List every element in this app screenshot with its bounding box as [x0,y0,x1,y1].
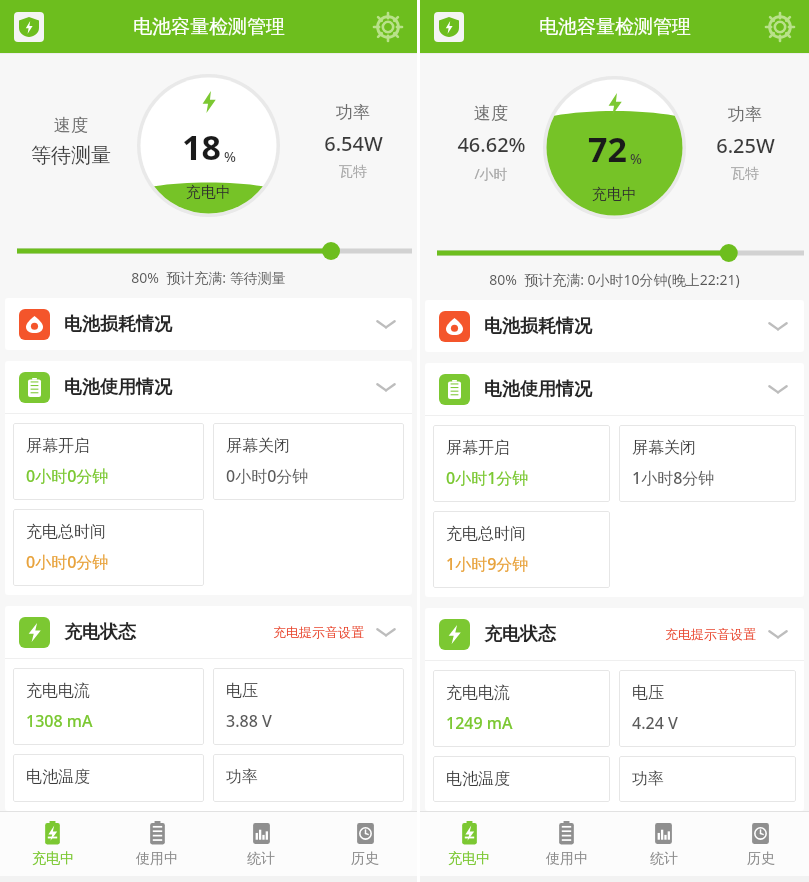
staticText: 速度 [54,115,88,136]
staticText: % [224,147,236,166]
staticText: 0小时0分钟 [26,465,109,487]
staticText: 0小时0分钟 [226,465,309,487]
button[interactable]: 充电中 [0,812,105,876]
staticText: 屏幕开启 [446,438,510,458]
button[interactable]: 充电提示音设置 [269,620,368,644]
button[interactable]: 使用中 [105,812,209,876]
staticText: 电池温度 [26,767,90,787]
staticText: 1308 mA [26,710,93,732]
staticText: 瓦特 [339,163,367,181]
staticText: 80% 预计充满: 0小时10分钟(晚上22:21) [489,270,740,289]
staticText: 1小时8分钟 [632,467,715,489]
staticText: 功率 [226,767,258,787]
staticText: 历史 [747,850,775,868]
staticText: 速度 [474,103,508,124]
button[interactable]: 电池使用情况 [5,361,412,413]
staticText: 电池损耗情况 [484,315,766,338]
button[interactable]: 功率 [213,754,404,802]
staticText: 功率 [728,104,762,125]
staticText: 充电总时间 [26,522,106,542]
button[interactable]: 屏幕关闭 [619,425,796,502]
staticText: 充电电流 [446,683,510,703]
staticText: 电池使用情况 [64,376,374,399]
staticText: 瓦特 [731,165,759,183]
button[interactable]: 屏幕开启 [13,423,204,500]
staticText: 电池容量检测管理 [133,15,285,39]
staticText: 使用中 [546,850,588,868]
staticText: 电池使用情况 [484,378,766,401]
staticText: 0小时0分钟 [26,551,109,573]
staticText: 电池容量检测管理 [539,15,691,39]
staticText: 18 [182,124,221,170]
staticText: 0小时1分钟 [446,467,529,489]
button[interactable]: 充电电流 [13,668,204,745]
staticText: 充电状态 [484,623,556,646]
staticText: /小时 [474,164,508,183]
button[interactable]: 屏幕开启 [433,425,610,502]
staticText: 屏幕关闭 [632,438,696,458]
staticText: 电压 [632,683,664,703]
staticText: 充电提示音设置 [665,626,756,642]
staticText: 等待测量 [31,143,111,168]
button[interactable]: 充电总时间 [433,511,610,588]
staticText: 功率 [632,769,664,789]
button[interactable]: 统计 [209,812,313,876]
staticText: 使用中 [136,850,178,868]
button[interactable]: 充电状态 [5,606,412,658]
staticText: 统计 [247,850,275,868]
staticText: 充电电流 [26,681,90,701]
staticText: 充电状态 [64,621,136,644]
staticText: 充电中 [592,185,637,204]
staticText: 充电提示音设置 [273,624,364,640]
button[interactable]: App icon [434,12,464,42]
button[interactable]: 统计 [615,812,712,876]
staticText: 电池损耗情况 [64,313,374,336]
staticText: 1249 mA [446,712,513,734]
button[interactable]: 屏幕关闭 [213,423,404,500]
button[interactable]: 充电电流 [433,670,610,747]
staticText: 6.25W [716,132,775,159]
staticText: 80% 预计充满: 等待测量 [131,268,286,287]
staticText: 6.54W [324,130,383,157]
button[interactable]: 电池损耗情况 [425,300,804,352]
button[interactable]: 充电状态 [425,608,804,660]
staticText: 4.24 V [632,712,678,734]
staticText: % [630,149,642,168]
staticText: 充电总时间 [446,524,526,544]
staticText: 电池温度 [446,769,510,789]
staticText: 3.88 V [226,710,272,732]
button[interactable]: 历史 [712,812,809,876]
button[interactable]: 电池使用情况 [425,363,804,415]
button[interactable]: 充电中 [420,812,518,876]
button[interactable]: 电池温度 [433,756,610,802]
button[interactable]: 历史 [313,812,417,876]
button[interactable]: 电池温度 [13,754,204,802]
staticText: 统计 [650,850,678,868]
staticText: 46.62% [457,131,526,158]
staticText: 屏幕关闭 [226,436,290,456]
button[interactable]: App icon [14,12,44,42]
staticText: 72 [588,126,627,172]
button[interactable]: 充电提示音设置 [661,622,760,646]
button[interactable]: 充电总时间 [13,509,204,586]
button[interactable]: 电池损耗情况 [5,298,412,350]
button[interactable]: 电压 [619,670,796,747]
staticText: 1小时9分钟 [446,553,529,575]
staticText: 电压 [226,681,258,701]
staticText: 充电中 [186,183,231,202]
button[interactable]: 使用中 [518,812,615,876]
staticText: 充电中 [32,850,74,868]
staticText: 功率 [336,102,370,123]
staticText: 屏幕开启 [26,436,90,456]
staticText: 历史 [351,850,379,868]
button[interactable]: 电压 [213,668,404,745]
button[interactable]: Settings [371,10,405,44]
button[interactable]: Settings [763,10,797,44]
staticText: 充电中 [448,850,490,868]
button[interactable]: 功率 [619,756,796,802]
